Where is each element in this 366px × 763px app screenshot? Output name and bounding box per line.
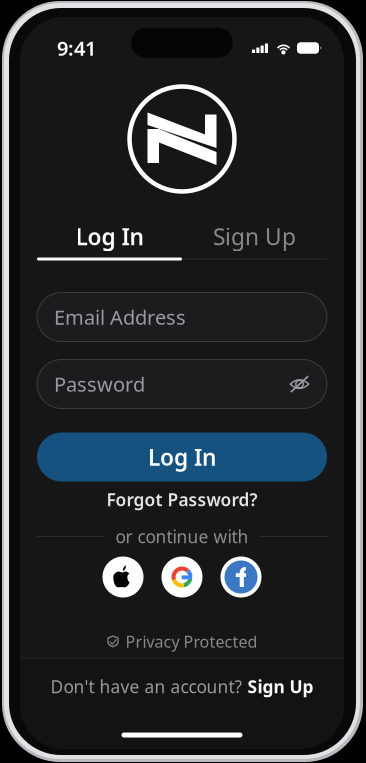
staticText: Password — [54, 371, 145, 397]
staticText: or continue with — [115, 525, 248, 548]
staticText: 9:41 — [57, 35, 96, 61]
staticText: Log In — [75, 221, 143, 251]
staticText: Email Address — [54, 304, 186, 330]
button[interactable]: Continue with Apple — [102, 556, 143, 597]
button[interactable]: Continue with Google — [161, 556, 202, 597]
staticText: Sign Up — [213, 221, 296, 251]
button[interactable]: Log In — [37, 223, 182, 249]
button[interactable]: Continue with Facebook — [220, 556, 261, 597]
button[interactable]: Forgot Password? — [92, 490, 271, 508]
staticText: Don't have an account? — [50, 675, 242, 698]
button[interactable]: Log In — [37, 432, 327, 481]
staticText: Log In — [148, 442, 216, 472]
button[interactable]: Email Address — [37, 292, 327, 341]
staticText: Privacy Protected — [125, 631, 257, 652]
staticText: Sign Up — [247, 675, 313, 698]
button[interactable]: Password — [37, 359, 327, 408]
staticText: Forgot Password? — [106, 488, 257, 511]
button[interactable]: Sign Up — [182, 223, 327, 249]
button[interactable]: Don't have an account? — [40, 673, 323, 699]
